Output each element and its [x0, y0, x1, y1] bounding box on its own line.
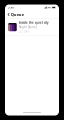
button[interactable]: Inside the quiet city: [5, 19, 59, 35]
staticText: Night Stories: [19, 25, 37, 29]
staticText: 32 min: [19, 30, 29, 33]
staticText: Inside the quiet city: [19, 21, 48, 25]
staticText: Queue: [11, 12, 24, 17]
button[interactable]: Queue: [5, 10, 26, 19]
staticText: 9:41: [8, 6, 15, 9]
